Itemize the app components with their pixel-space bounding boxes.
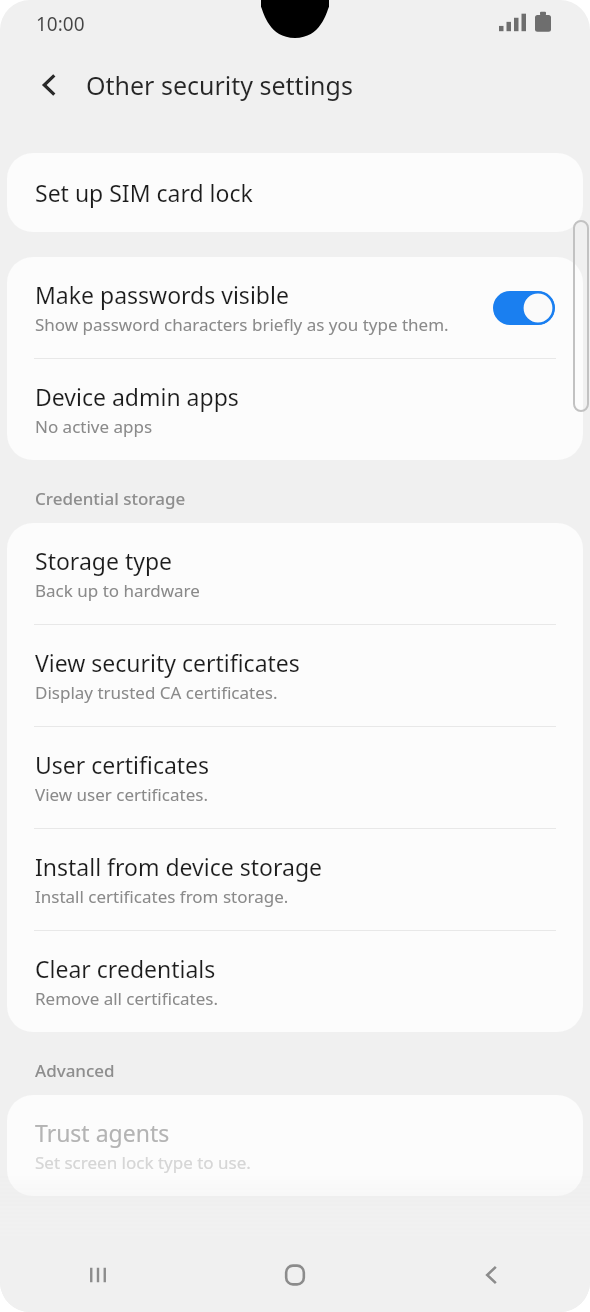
staticText: Clear credentials xyxy=(35,953,216,984)
staticText: Display trusted CA certificates. xyxy=(35,681,278,704)
staticText: Trust agents xyxy=(35,1117,170,1148)
button[interactable]: Install from device storage xyxy=(7,829,583,930)
button[interactable]: Navigate up xyxy=(22,57,78,113)
staticText: View security certificates xyxy=(35,647,300,678)
staticText: User certificates xyxy=(35,749,210,780)
button[interactable]: Recent apps xyxy=(0,1238,196,1312)
staticText: Advanced xyxy=(35,1059,115,1082)
button[interactable]: User certificates xyxy=(7,727,583,828)
staticText: Set up SIM card lock xyxy=(35,177,253,208)
staticText: Make passwords visible xyxy=(35,279,289,310)
staticText: Show password characters briefly as you … xyxy=(35,313,449,336)
button[interactable]: Trust agents xyxy=(7,1095,583,1196)
button[interactable]: Back xyxy=(393,1238,590,1312)
button[interactable]: Storage type xyxy=(7,523,583,624)
button[interactable]: View security certificates xyxy=(7,625,583,726)
staticText: Credential storage xyxy=(35,487,186,510)
staticText: Storage type xyxy=(35,545,173,576)
staticText: Install certificates from storage. xyxy=(35,885,289,908)
staticText: Other security settings xyxy=(86,68,353,102)
staticText: Set screen lock type to use. xyxy=(35,1151,251,1174)
button[interactable]: Device admin apps xyxy=(7,359,583,460)
staticText: Device admin apps xyxy=(35,381,239,412)
staticText: 10:00 xyxy=(36,11,85,37)
staticText: Back up to hardware xyxy=(35,579,200,602)
staticText: Install from device storage xyxy=(35,851,322,882)
button[interactable]: Home xyxy=(196,1238,393,1312)
staticText: View user certificates. xyxy=(35,783,208,806)
button[interactable]: Make passwords visible xyxy=(7,257,583,358)
button[interactable]: Set up SIM card lock xyxy=(7,153,583,232)
button[interactable]: Clear credentials xyxy=(7,931,583,1032)
button[interactable]: Make passwords visible xyxy=(493,291,555,325)
staticText: No active apps xyxy=(35,415,153,438)
staticText: Remove all certificates. xyxy=(35,987,219,1010)
